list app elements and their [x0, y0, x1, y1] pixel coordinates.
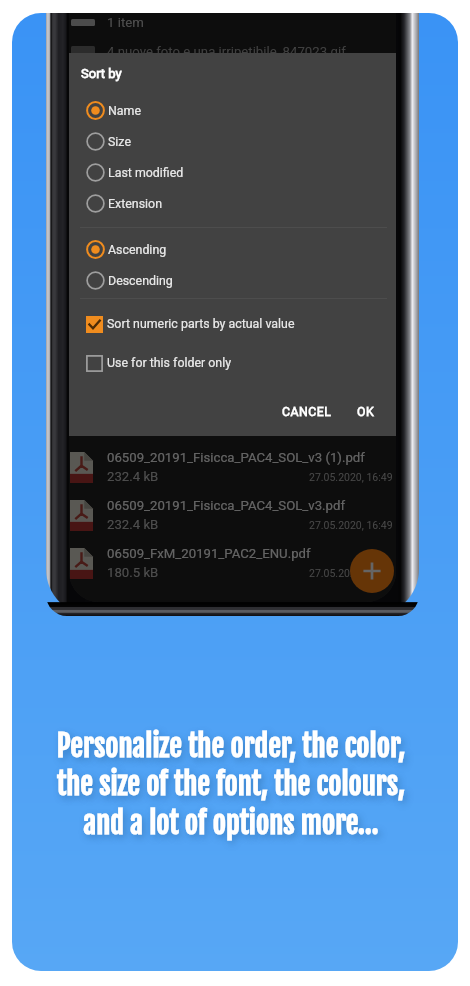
staticText: Ascending	[108, 242, 167, 257]
staticText: Descending	[108, 273, 173, 288]
staticText: Personalize the order, the color, the si…	[12, 728, 454, 841]
button[interactable]: Last modified	[69, 157, 396, 188]
staticText: 232.4 kB	[107, 469, 159, 484]
staticText: 180.5 kB	[107, 565, 159, 580]
staticText: 4 nuove foto e una irripetibile_847023.g…	[107, 44, 346, 59]
staticText: 06509_20191_Fisicca_PAC4_SOL_v3.pdf	[107, 498, 346, 513]
staticText: 27.05.2020, 16:49	[309, 471, 393, 483]
staticText: 232.4 kB	[107, 517, 159, 532]
staticText: OK	[357, 405, 375, 419]
button[interactable]: OK	[349, 397, 383, 427]
staticText: Sort numeric parts by actual value	[107, 316, 295, 331]
button[interactable]: 06509_20191_Fisicca_PAC4_SOL_v3.pdf	[69, 496, 396, 544]
button[interactable]: Name	[69, 95, 396, 126]
staticText: Extension	[108, 196, 162, 211]
button[interactable]: Size	[69, 126, 396, 157]
staticText: 27.05.2020, 16:49	[309, 519, 393, 531]
button[interactable]: Add	[350, 549, 394, 593]
staticText: 1 item	[107, 15, 144, 30]
button[interactable]: Sort numeric parts by actual value	[69, 307, 396, 341]
button[interactable]: CANCEL	[274, 397, 340, 427]
button[interactable]: Use for this folder only	[69, 346, 396, 380]
staticText: 27.05.2020, 16:49	[309, 567, 393, 579]
button[interactable]: 06509_20191_Fisicca_PAC4_SOL_v3 (1).pdf	[69, 448, 396, 496]
staticText: Use for this folder only	[107, 355, 232, 370]
staticText: 06509_FxM_20191_PAC2_ENU.pdf	[107, 546, 311, 561]
staticText: Size	[108, 134, 131, 149]
staticText: Name	[108, 103, 142, 118]
staticText: Last modified	[108, 165, 184, 180]
staticText: Sort by	[81, 66, 122, 81]
button[interactable]: Descending	[69, 265, 396, 296]
staticText: 06509_20191_Fisicca_PAC4_SOL_v3 (1).pdf	[107, 450, 365, 465]
staticText: CANCEL	[282, 405, 332, 419]
button[interactable]: Extension	[69, 188, 396, 219]
button[interactable]: 06509_FxM_20191_PAC2_ENU.pdf	[69, 544, 396, 592]
button[interactable]: Ascending	[69, 234, 396, 265]
